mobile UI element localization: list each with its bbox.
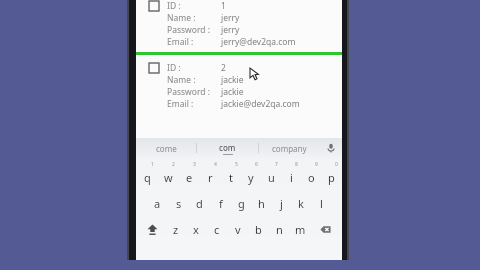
staticText: 6 [255,161,258,168]
staticText: g [238,196,245,211]
button[interactable]: company [259,138,320,158]
staticText: jackie [221,86,244,98]
staticText: 1 [151,161,154,168]
button[interactable]: v [227,214,248,244]
button[interactable]: ID : [136,62,342,110]
button[interactable]: 7 [261,162,281,188]
staticText: ID : [167,0,181,12]
staticText: v [235,222,241,237]
button[interactable]: z [166,214,186,244]
button[interactable]: l [311,188,331,214]
button[interactable]: s [168,188,189,214]
staticText: come [156,143,177,154]
staticText: Password : [167,24,210,36]
staticText: 0 [335,161,338,168]
staticText: company [272,143,307,154]
staticText: Name : [167,12,196,24]
staticText: com [219,142,236,153]
staticText: c [214,222,220,237]
staticText: 7 [275,161,278,168]
button[interactable]: h [251,188,271,214]
staticText: u [268,170,275,185]
staticText: 3 [193,161,196,168]
button[interactable]: come [136,138,196,158]
staticText: t [229,170,233,185]
staticText: k [298,196,304,211]
button[interactable]: b [248,214,269,244]
button[interactable]: 0 [321,162,341,188]
staticText: m [295,222,306,237]
staticText: j [280,196,283,211]
button[interactable]: Shift [138,214,166,244]
staticText: h [258,196,265,211]
button[interactable]: 3 [179,162,200,188]
staticText: 2 [221,62,226,74]
staticText: 5 [235,161,238,168]
staticText: jackie [221,74,244,86]
button[interactable]: 2 [158,162,179,188]
button[interactable]: Voice input [320,138,342,158]
staticText: o [308,170,315,185]
staticText: 8 [295,161,298,168]
staticText: Email : [167,98,194,110]
button[interactable]: 6 [241,162,261,188]
staticText: ID : [167,62,181,74]
button[interactable]: 1 [137,162,158,188]
button[interactable]: f [210,188,231,214]
staticText: 4 [214,161,217,168]
staticText: 1 [221,0,226,12]
staticText: 2 [172,161,175,168]
staticText: x [193,222,199,237]
button[interactable]: x [186,214,206,244]
staticText: l [320,196,323,211]
button[interactable]: k [291,188,311,214]
button[interactable]: Backspace [311,214,340,244]
staticText: r [208,170,213,185]
staticText: Password : [167,86,210,98]
button[interactable]: c [206,214,227,244]
staticText: d [196,196,203,211]
staticText: s [176,196,182,211]
staticText: q [144,170,151,185]
staticText: n [276,222,283,237]
staticText: y [248,170,254,185]
button[interactable]: com [197,138,258,158]
staticText: p [328,170,335,185]
button[interactable]: a [147,188,168,214]
staticText: jerry@dev2qa.com [221,36,296,48]
staticText: 9 [315,161,318,168]
button[interactable]: n [269,214,290,244]
button[interactable]: 5 [221,162,241,188]
staticText: f [219,196,223,211]
staticText: i [290,170,293,185]
staticText: b [255,222,262,237]
button[interactable]: d [189,188,210,214]
button[interactable]: ID : [136,0,342,48]
staticText: jerry [221,12,240,24]
button[interactable]: g [231,188,251,214]
staticText: w [164,170,173,185]
button[interactable]: 9 [301,162,321,188]
staticText: z [173,222,179,237]
button[interactable]: m [290,214,311,244]
staticText: jerry [221,24,240,36]
staticText: Name : [167,74,196,86]
staticText: a [154,196,161,211]
button[interactable]: j [271,188,291,214]
button[interactable]: 4 [200,162,221,188]
staticText: jackie@dev2qa.com [221,98,300,110]
button[interactable]: 8 [281,162,301,188]
staticText: e [186,170,193,185]
staticText: Email : [167,36,194,48]
